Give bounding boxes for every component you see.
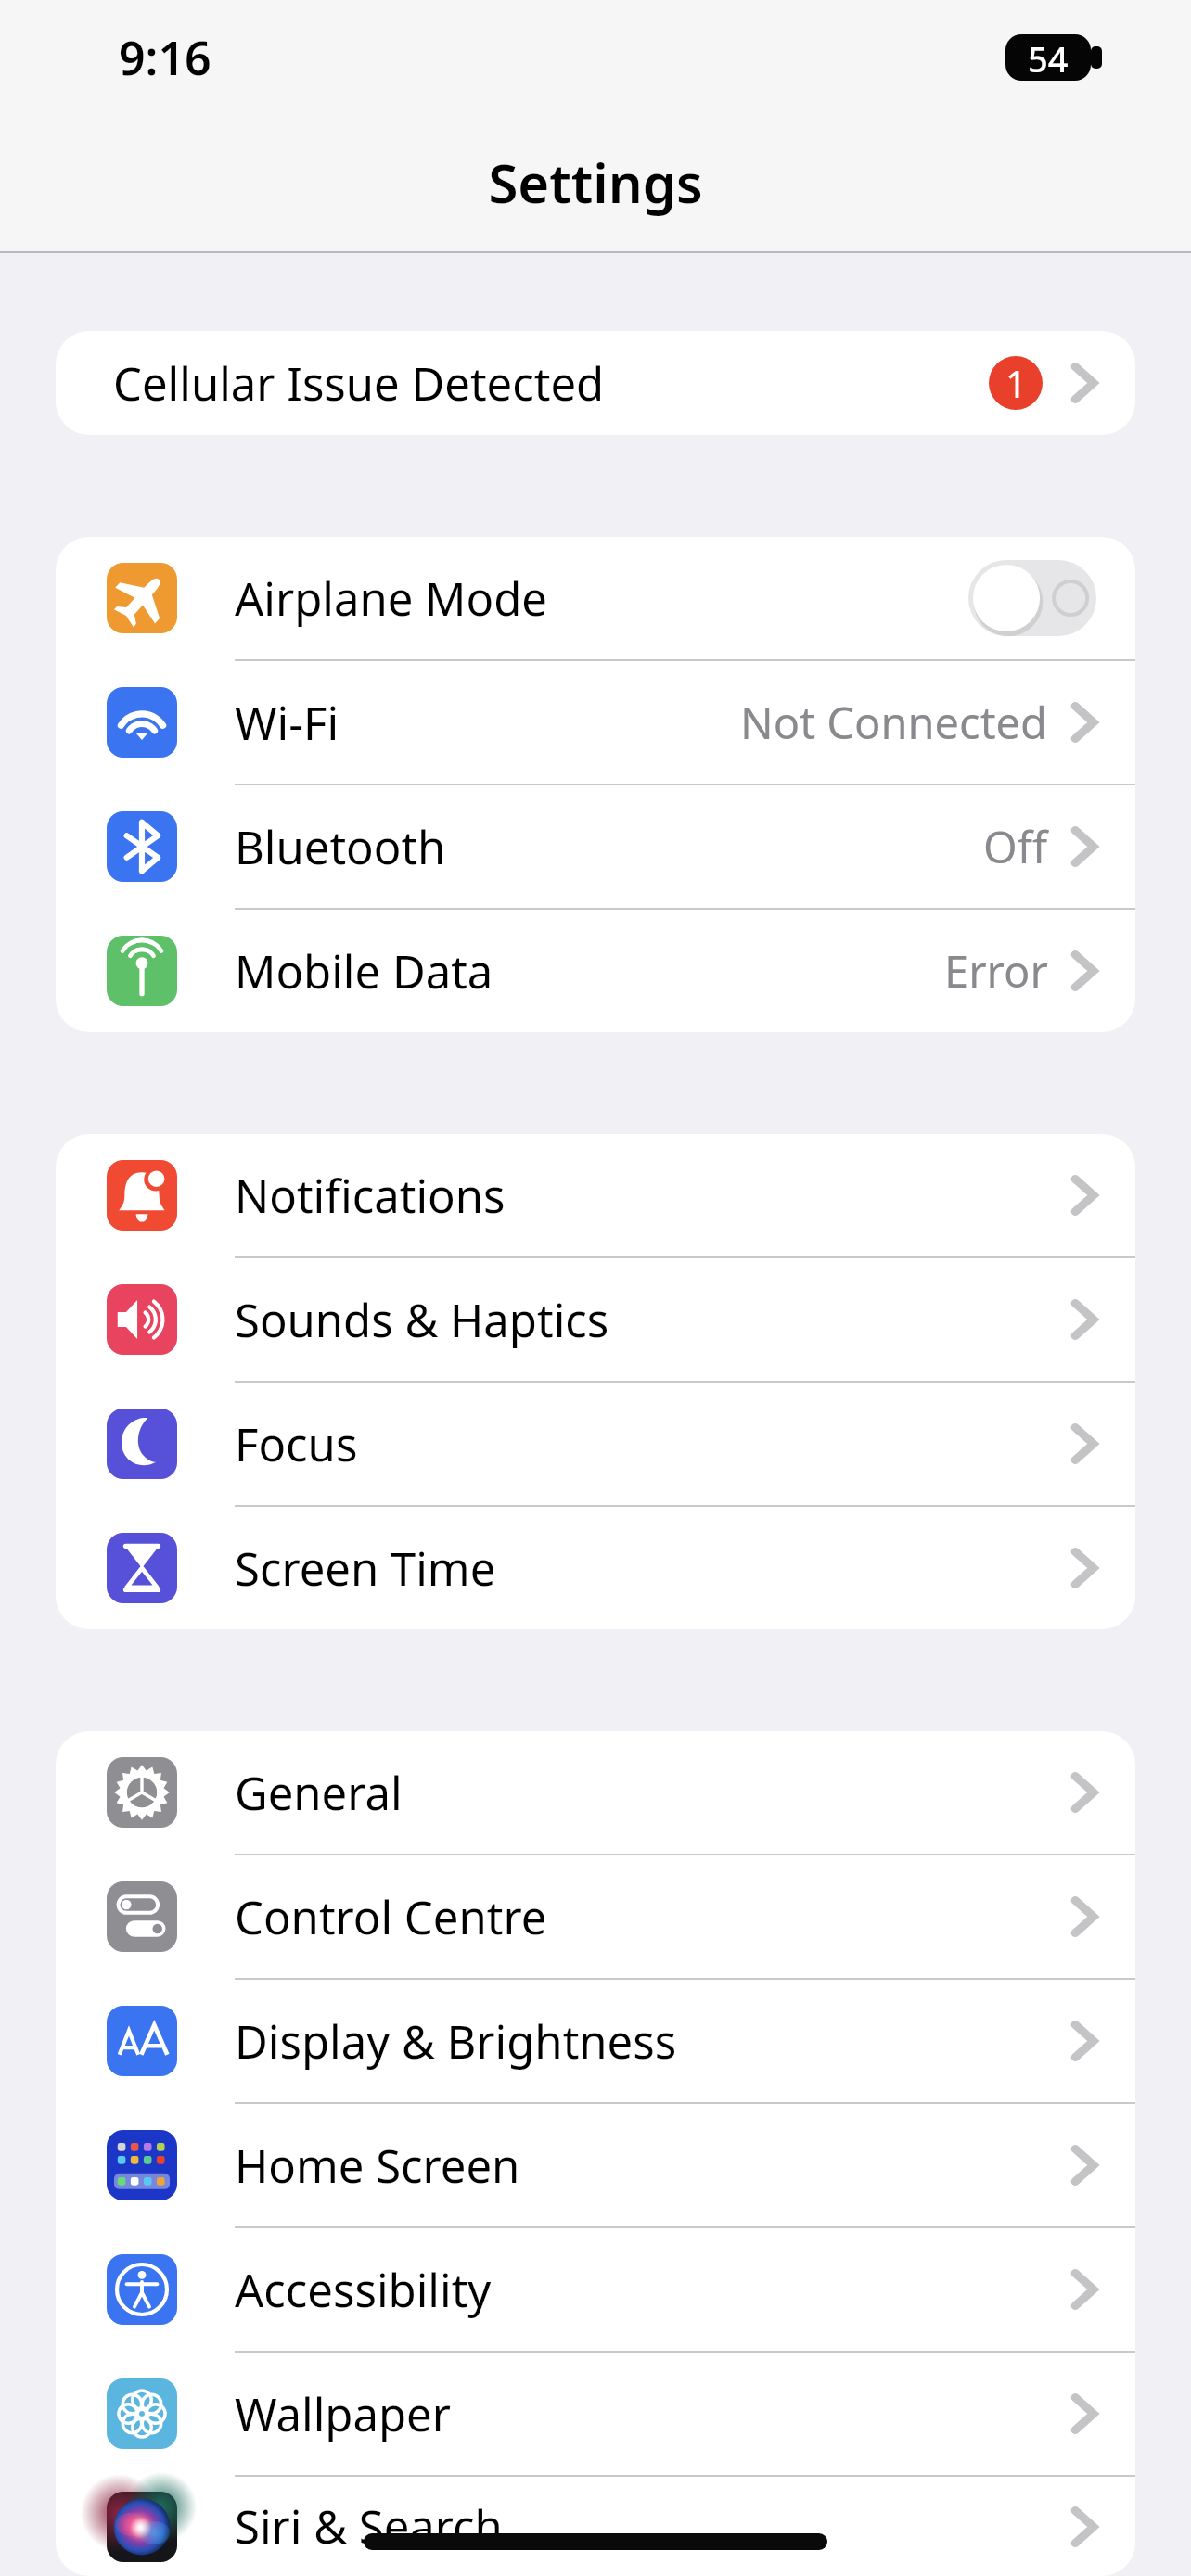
button[interactable]: Notifications	[56, 1134, 1135, 1256]
staticText: 1	[1005, 358, 1027, 408]
button[interactable]: Sounds & Haptics	[56, 1258, 1135, 1381]
button[interactable]: Display & Brightness	[56, 1980, 1135, 2102]
staticText: 9:16	[119, 26, 211, 89]
staticText: Notifications	[235, 1165, 506, 1227]
staticText: Bluetooth	[235, 816, 446, 878]
button[interactable]: Wallpaper	[56, 2353, 1135, 2475]
staticText: Not Connected	[740, 693, 1048, 752]
button[interactable]: Airplane Mode	[56, 537, 1135, 659]
button[interactable]: Cellular Issue Detected	[56, 331, 1135, 435]
staticText: Airplane Mode	[235, 567, 547, 630]
staticText: Focus	[235, 1413, 358, 1475]
button[interactable]: Screen Time	[56, 1507, 1135, 1629]
button[interactable]: Bluetooth	[56, 785, 1135, 908]
button[interactable]: Siri & Search	[56, 2477, 1135, 2576]
staticText: Error	[944, 941, 1048, 1001]
staticText: 54	[1028, 34, 1069, 81]
button[interactable]: Focus	[56, 1383, 1135, 1505]
staticText: Sounds & Haptics	[235, 1289, 609, 1351]
button[interactable]: Control Centre	[56, 1855, 1135, 1978]
button[interactable]: Home Screen	[56, 2104, 1135, 2226]
button[interactable]: Accessibility	[56, 2228, 1135, 2351]
staticText: Wi-Fi	[235, 692, 339, 754]
staticText: Wallpaper	[235, 2383, 451, 2445]
staticText: Off	[983, 817, 1048, 876]
staticText: General	[235, 1762, 403, 1824]
staticText: Cellular Issue Detected	[113, 352, 605, 414]
staticText: Screen Time	[235, 1537, 496, 1600]
button[interactable]: General	[56, 1731, 1135, 1854]
staticText: Display & Brightness	[235, 2010, 677, 2072]
staticText: Control Centre	[235, 1886, 547, 1948]
staticText: Home Screen	[235, 2135, 520, 2197]
staticText: Settings	[488, 146, 703, 219]
button[interactable]: Airplane Mode toggle, off	[968, 560, 1096, 636]
button[interactable]: Wi-Fi	[56, 661, 1135, 784]
staticText: Siri & Search	[235, 2495, 503, 2557]
button[interactable]: Mobile Data	[56, 910, 1135, 1032]
staticText: Mobile Data	[235, 940, 493, 1002]
staticText: Accessibility	[235, 2259, 492, 2321]
